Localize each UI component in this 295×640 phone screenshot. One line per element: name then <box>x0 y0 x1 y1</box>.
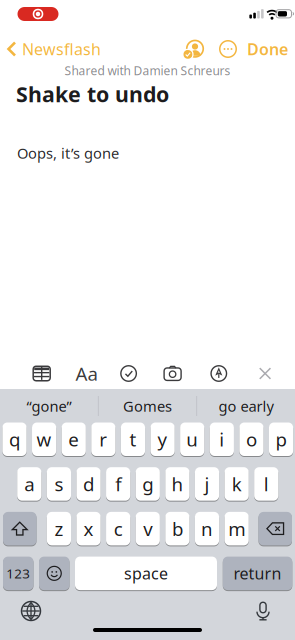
staticText: “gone” <box>26 396 71 416</box>
button[interactable]: Share <box>183 39 204 58</box>
staticText: Done <box>247 38 288 60</box>
staticText: s <box>54 472 63 496</box>
staticText: a <box>24 472 34 496</box>
button[interactable]: Close <box>259 367 271 380</box>
button[interactable]: j <box>195 467 219 502</box>
button[interactable]: Next keyboard <box>21 601 40 620</box>
staticText: space <box>124 563 168 584</box>
staticText: t <box>129 427 136 452</box>
button[interactable]: Shift <box>3 512 36 546</box>
button[interactable]: a <box>17 467 41 502</box>
staticText: g <box>142 472 153 496</box>
button[interactable]: Back to Newsflash <box>7 38 127 60</box>
button[interactable]: z <box>47 512 71 546</box>
button[interactable]: c <box>106 512 130 546</box>
button[interactable]: v <box>136 512 160 546</box>
button[interactable]: k <box>224 467 249 502</box>
button[interactable]: p <box>269 422 293 457</box>
button[interactable]: Dictate <box>256 601 270 620</box>
staticText: Oops, it’s gone <box>17 143 119 163</box>
staticText: i <box>219 427 224 452</box>
button[interactable]: u <box>180 422 204 457</box>
staticText: w <box>37 427 52 452</box>
button[interactable]: s <box>47 467 71 502</box>
staticText: l <box>264 472 269 496</box>
staticText: j <box>204 472 209 496</box>
button[interactable]: w <box>32 422 56 457</box>
button[interactable]: Delete <box>258 512 292 546</box>
button[interactable]: i <box>210 422 234 457</box>
staticText: 123 <box>6 564 30 582</box>
staticText: r <box>99 427 107 452</box>
button[interactable]: r <box>91 422 115 457</box>
staticText: b <box>172 516 183 541</box>
staticText: Shake to undo <box>16 80 169 108</box>
button[interactable]: t <box>121 422 145 457</box>
staticText: u <box>186 427 198 452</box>
staticText: m <box>228 516 245 541</box>
button[interactable]: Gomes <box>99 389 196 422</box>
button[interactable]: l <box>254 467 278 502</box>
staticText: Gomes <box>123 396 172 416</box>
button[interactable]: y <box>150 422 175 457</box>
staticText: x <box>83 516 93 541</box>
button[interactable]: d <box>76 467 101 502</box>
button[interactable]: Insert table <box>33 366 50 381</box>
staticText: h <box>171 472 183 496</box>
staticText: Aa <box>75 361 97 386</box>
staticText: y <box>158 427 168 452</box>
button[interactable]: g <box>136 467 160 502</box>
button[interactable]: “gone” <box>0 389 97 422</box>
staticText: o <box>246 427 257 452</box>
button[interactable]: x <box>76 512 101 546</box>
staticText: f <box>115 472 121 496</box>
staticText: k <box>232 472 242 496</box>
button[interactable]: e <box>62 422 86 457</box>
staticText: Shared with Damien Schreurs <box>64 62 230 78</box>
staticText: d <box>83 472 94 496</box>
button[interactable]: b <box>165 512 189 546</box>
staticText: return <box>234 563 282 584</box>
button[interactable]: o <box>239 422 264 457</box>
button[interactable]: Emoji <box>39 557 69 591</box>
staticText: v <box>143 516 152 541</box>
button[interactable]: Markup <box>211 366 227 381</box>
button[interactable]: return <box>223 557 292 591</box>
button[interactable]: f <box>106 467 130 502</box>
button[interactable]: space <box>75 557 217 591</box>
staticText: Newsflash <box>22 38 101 60</box>
staticText: e <box>68 427 79 452</box>
staticText: q <box>9 427 20 452</box>
button[interactable]: 123 <box>3 557 33 591</box>
button[interactable]: Checklist <box>121 366 136 381</box>
staticText: n <box>201 516 213 541</box>
button[interactable]: n <box>195 512 219 546</box>
button[interactable]: h <box>165 467 189 502</box>
button[interactable]: Format <box>75 361 97 386</box>
button[interactable]: Stop screen recording <box>17 7 58 21</box>
button[interactable]: m <box>224 512 249 546</box>
button[interactable]: Camera <box>164 366 181 381</box>
button[interactable]: go early <box>197 389 294 422</box>
staticText: z <box>54 516 63 541</box>
button[interactable]: Done <box>228 38 288 60</box>
button[interactable]: q <box>2 422 27 457</box>
staticText: p <box>276 427 287 452</box>
staticText: c <box>114 516 123 541</box>
button[interactable]: More <box>220 41 236 57</box>
staticText: go early <box>218 396 273 416</box>
